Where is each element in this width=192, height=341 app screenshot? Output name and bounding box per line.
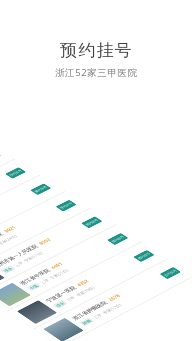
- staticText: 中医: [28, 284, 40, 290]
- staticText: 预约挂号: [84, 218, 99, 226]
- staticText: 浙江省中医院: [18, 268, 52, 286]
- button[interactable]: 杭州市第一人民医院: [0, 208, 116, 293]
- staticText: 预约挂号: [110, 235, 125, 243]
- staticText: 三甲: [39, 278, 50, 285]
- button[interactable]: 浙江省人民医院: [0, 175, 65, 259]
- button[interactable]: 宁波第一医院: [8, 242, 168, 329]
- button[interactable]: 预约挂号: [55, 200, 77, 212]
- button[interactable]: 预约挂号: [133, 250, 155, 262]
- staticText: 肿瘤: [81, 319, 92, 325]
- staticText: 专家(24位): [0, 234, 19, 246]
- staticText: 预约挂号: [33, 185, 48, 193]
- staticText: 4352: [75, 278, 91, 287]
- button[interactable]: 预约挂号: [5, 167, 26, 179]
- button[interactable]: 预约挂号: [30, 183, 52, 195]
- staticText: 9021: [2, 225, 18, 234]
- staticText: 专家(17位): [22, 251, 44, 263]
- staticText: 2678: [106, 293, 122, 302]
- staticText: 预约挂号: [60, 40, 133, 61]
- button[interactable]: 浙江大学医学院附属第一医院: [0, 143, 14, 225]
- staticText: 浙江52家三甲医院: [55, 66, 138, 79]
- staticText: 专家(21位): [48, 268, 70, 280]
- staticText: 综合: [54, 301, 66, 308]
- staticText: 4401: [49, 261, 65, 270]
- staticText: 专家(19位): [74, 285, 97, 298]
- staticText: 三甲: [13, 261, 24, 267]
- staticText: 浙江省第一医院: [0, 231, 5, 252]
- button[interactable]: 预约挂号: [159, 267, 181, 279]
- button[interactable]: 浙江省第一医院: [0, 192, 90, 276]
- staticText: 宁波第一医院: [44, 285, 78, 303]
- staticText: 专家(12位): [101, 303, 123, 315]
- staticText: 预约挂号: [59, 202, 73, 210]
- staticText: 预约挂号: [8, 169, 23, 177]
- staticText: 综合: [2, 266, 14, 273]
- button[interactable]: 浙江省中医院: [0, 225, 142, 311]
- button[interactable]: 浙江省肿瘤医院: [34, 258, 192, 341]
- staticText: 三甲: [65, 295, 77, 302]
- button[interactable]: 预约挂号: [81, 216, 103, 228]
- staticText: 三甲: [92, 313, 103, 320]
- button[interactable]: 浙江大学医学院附属第二医院: [0, 159, 40, 242]
- staticText: 杭州市第一人民医院: [0, 243, 40, 269]
- staticText: 8552: [37, 237, 53, 246]
- staticText: 预约挂号: [163, 269, 178, 277]
- staticText: 预约挂号: [136, 252, 151, 260]
- button[interactable]: 预约挂号: [0, 151, 1, 163]
- staticText: 浙江省肿瘤医院: [71, 300, 109, 321]
- button[interactable]: 预约挂号: [107, 233, 129, 245]
